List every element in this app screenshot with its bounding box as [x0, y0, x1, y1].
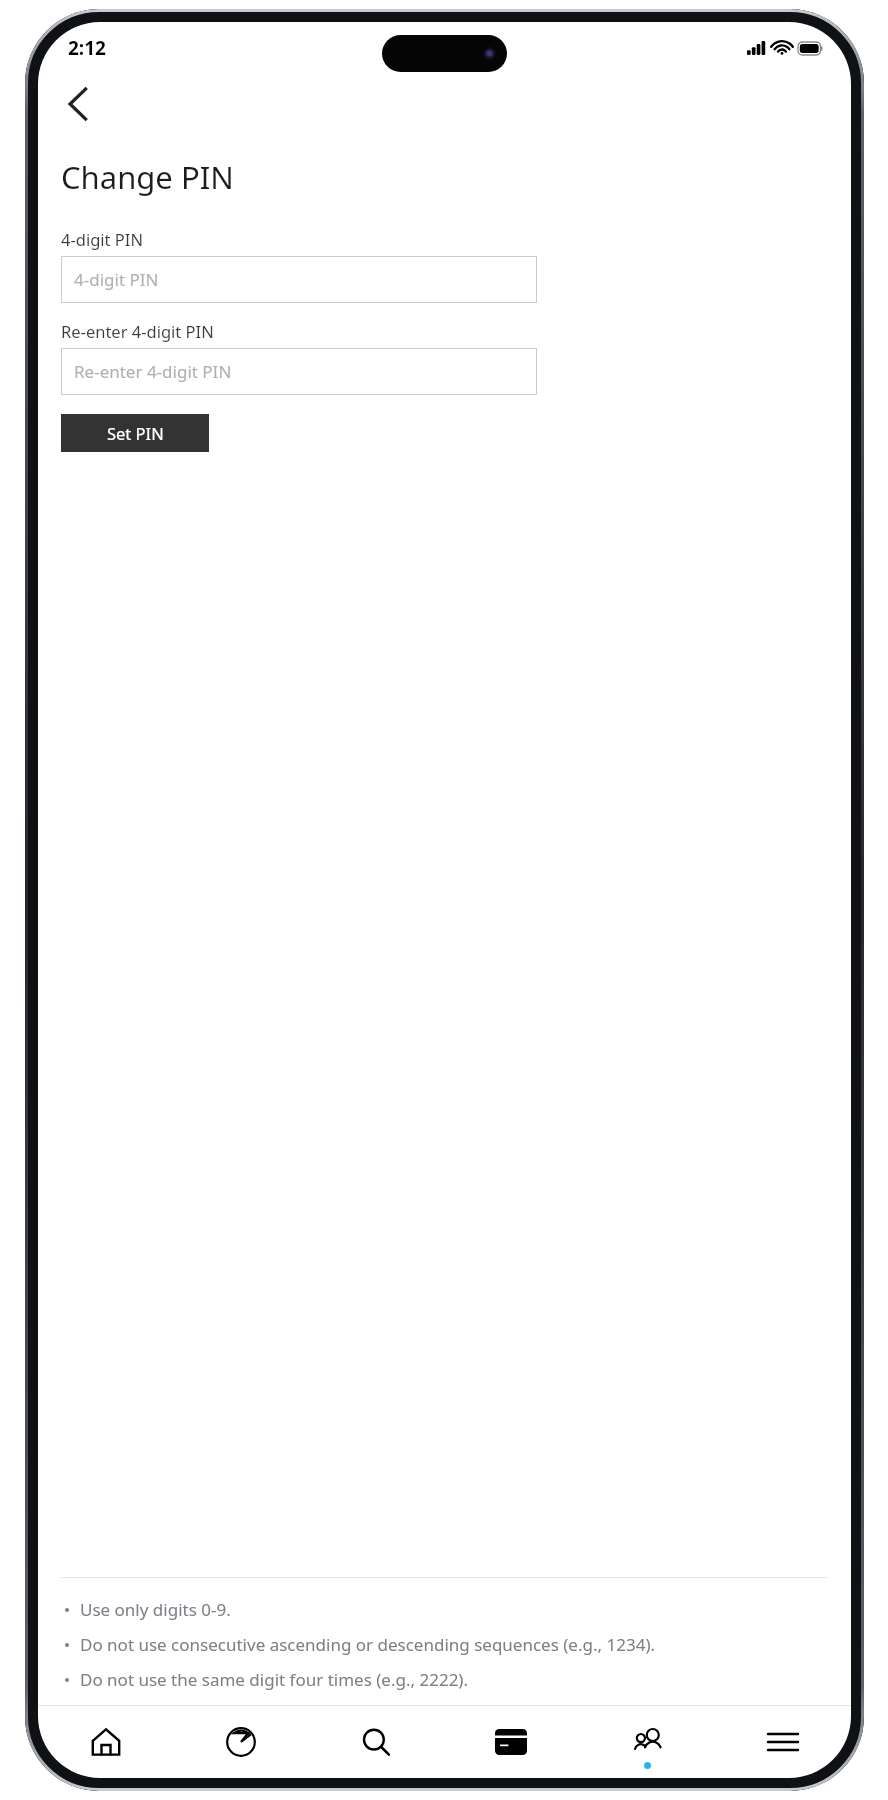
button[interactable]: 4-digit PIN: [61, 256, 537, 303]
button[interactable]: Cards: [443, 1706, 579, 1778]
button[interactable]: Insights: [173, 1706, 308, 1778]
button[interactable]: Search: [308, 1706, 443, 1778]
staticText: Change PIN: [61, 156, 234, 198]
button[interactable]: Home: [38, 1706, 173, 1778]
staticText: Do not use consecutive ascending or desc…: [80, 1633, 656, 1656]
button[interactable]: Menu: [715, 1706, 851, 1778]
staticText: Re-enter 4-digit PIN: [61, 320, 214, 342]
staticText: 4-digit PIN: [74, 268, 159, 291]
staticText: 4-digit PIN: [61, 228, 143, 250]
button[interactable]: Back: [52, 78, 104, 130]
button[interactable]: Set PIN: [61, 414, 209, 452]
staticText: Set PIN: [107, 422, 164, 444]
button[interactable]: Re-enter 4-digit PIN: [61, 348, 537, 395]
staticText: Re-enter 4-digit PIN: [74, 360, 232, 383]
staticText: Use only digits 0-9.: [80, 1598, 231, 1621]
staticText: 2:12: [68, 35, 106, 61]
button[interactable]: Accounts: [579, 1706, 715, 1778]
staticText: Do not use the same digit four times (e.…: [80, 1668, 469, 1691]
